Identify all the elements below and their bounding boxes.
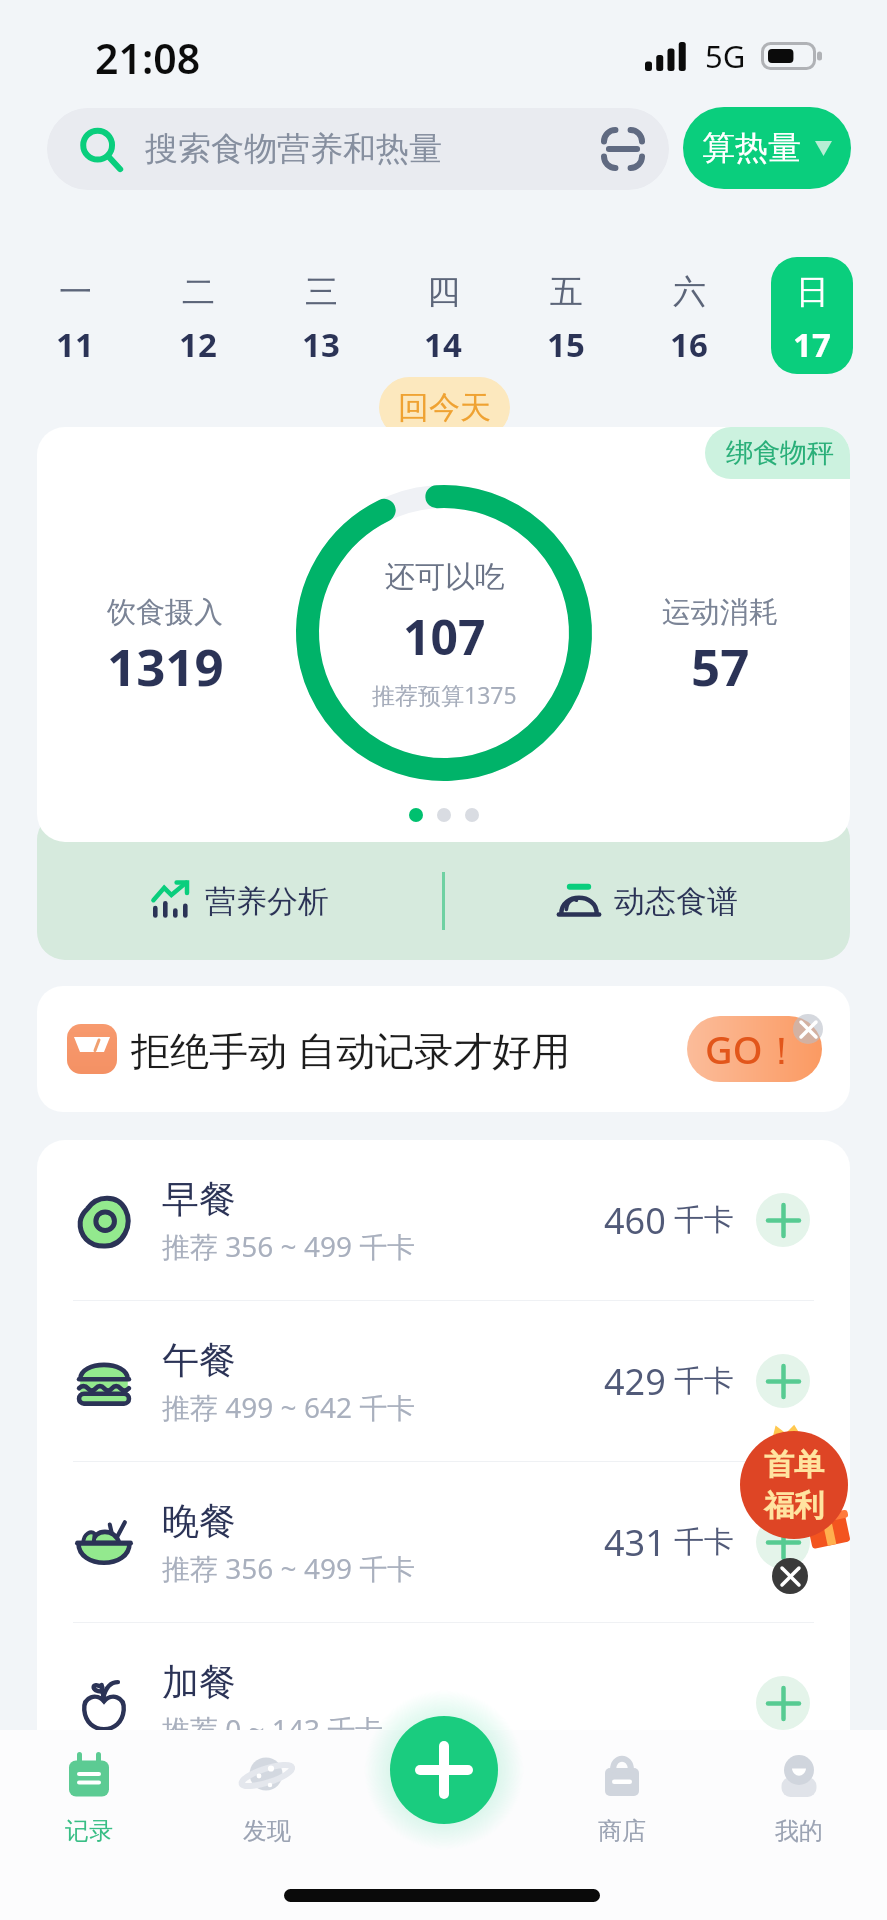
staticText: 算热量	[702, 127, 801, 169]
staticText: 13	[302, 322, 340, 367]
button[interactable]: Add 晚餐	[756, 1515, 810, 1569]
button[interactable]: 拒绝手动 自动记录才好用	[37, 986, 850, 1112]
staticText: 11	[56, 322, 94, 367]
button[interactable]: 搜索食物营养和热量	[47, 108, 669, 190]
staticText: 16	[670, 322, 708, 367]
staticText: 107	[403, 604, 486, 669]
button[interactable]: 二	[157, 257, 239, 374]
staticText: 拒绝手动 自动记录才好用	[131, 1023, 571, 1076]
staticText: 14	[424, 322, 462, 367]
staticText: 431	[604, 1518, 666, 1567]
staticText: 推荐预算1375	[372, 679, 517, 710]
staticText: 日	[796, 271, 829, 313]
button[interactable]: 发现	[178, 1730, 356, 1880]
staticText: 21:08	[95, 30, 201, 86]
button[interactable]: 记录	[0, 1730, 178, 1880]
staticText: 千卡	[674, 1523, 734, 1561]
staticText: 429	[604, 1357, 666, 1406]
button[interactable]: 加餐	[37, 1623, 850, 1783]
staticText: 营养分析	[205, 882, 329, 921]
staticText: 推荐 499 ~ 642 千卡	[162, 1388, 416, 1426]
staticText: 推荐 0 ~ 143 千卡	[162, 1710, 384, 1748]
staticText: 发现	[243, 1816, 291, 1846]
other: Scan barcode	[601, 127, 645, 171]
staticText: 57	[691, 631, 750, 700]
button[interactable]: 我的	[710, 1730, 887, 1880]
staticText: 回今天	[398, 388, 491, 427]
staticText: GO！	[705, 1023, 801, 1075]
staticText: 饮食摄入	[107, 594, 223, 631]
staticText: 17	[793, 322, 831, 367]
staticText: 四	[427, 271, 460, 313]
staticText: 460	[604, 1196, 666, 1245]
staticText: 六	[673, 271, 706, 313]
staticText: 推荐 356 ~ 499 千卡	[162, 1549, 416, 1587]
staticText: 还可以吃	[385, 558, 505, 596]
button[interactable]: 五	[525, 257, 607, 374]
staticText: 运动消耗	[662, 594, 778, 631]
button[interactable]: Add 加餐	[756, 1676, 810, 1730]
button[interactable]: Add 早餐	[756, 1193, 810, 1247]
staticText: 五	[550, 271, 583, 313]
button[interactable]: 营养分析	[37, 842, 442, 960]
button[interactable]: 早餐	[37, 1140, 850, 1300]
button[interactable]: 动态食谱	[445, 842, 850, 960]
staticText: 早餐	[162, 1176, 236, 1223]
staticText: 晚餐	[162, 1498, 236, 1545]
button[interactable]: 六	[648, 257, 730, 374]
staticText: 12	[179, 322, 217, 367]
staticText: 记录	[65, 1816, 113, 1846]
staticText: 首单	[764, 1446, 824, 1484]
staticText: 三	[305, 271, 338, 313]
button[interactable]: 三	[280, 257, 362, 374]
staticText: 15	[547, 322, 585, 367]
staticText: 动态食谱	[614, 882, 738, 921]
staticText: 5G	[705, 35, 746, 77]
button[interactable]: Close promotion	[772, 1558, 808, 1594]
staticText: 午餐	[162, 1337, 236, 1384]
staticText: 绑食物秤	[726, 436, 834, 470]
staticText: 加餐	[162, 1659, 236, 1706]
staticText: 1319	[107, 631, 224, 700]
staticText: 我的	[775, 1816, 823, 1846]
button[interactable]: Add record	[390, 1716, 498, 1824]
button[interactable]: GO！	[687, 1016, 822, 1082]
staticText: 千卡	[674, 1201, 734, 1239]
staticText: 一	[59, 271, 92, 313]
button[interactable]: 晚餐	[37, 1462, 850, 1622]
button[interactable]: 绑食物秤	[705, 427, 850, 479]
staticText: 商店	[598, 1816, 646, 1846]
staticText: 千卡	[674, 1362, 734, 1400]
button[interactable]: Close banner	[793, 1014, 823, 1044]
button[interactable]: 日	[771, 257, 853, 374]
staticText: 搜索食物营养和热量	[145, 128, 442, 170]
button[interactable]: 四	[402, 257, 484, 374]
staticText: 二	[182, 271, 215, 313]
button[interactable]: Add 午餐	[756, 1354, 810, 1408]
staticText: 推荐 356 ~ 499 千卡	[162, 1227, 416, 1265]
button[interactable]: 一	[34, 257, 116, 374]
button[interactable]: 午餐	[37, 1301, 850, 1461]
button[interactable]: 算热量	[683, 107, 851, 189]
button[interactable]: 回今天	[379, 377, 510, 438]
button[interactable]: 商店	[533, 1730, 710, 1880]
button[interactable]: 首单	[740, 1431, 848, 1539]
staticText: 福利	[764, 1487, 824, 1525]
